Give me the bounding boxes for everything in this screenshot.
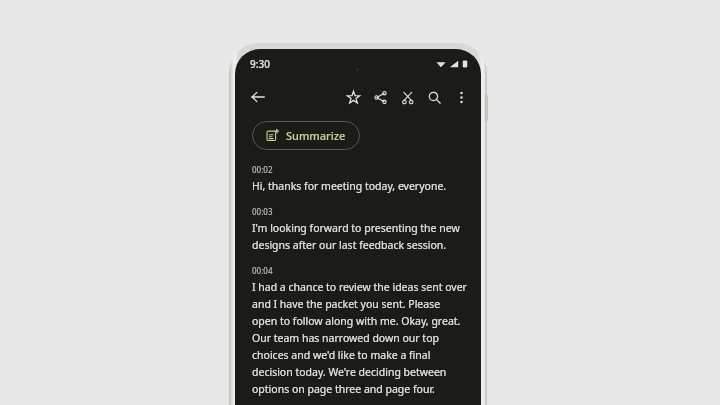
staticText: Summarize — [286, 128, 346, 143]
staticText: 9:30 — [250, 57, 270, 71]
button[interactable]: Back — [244, 83, 272, 111]
staticText: 00:02 — [252, 164, 273, 175]
staticText: 00:03 — [252, 206, 273, 217]
staticText: I'm looking forward to presenting the ne… — [252, 221, 468, 252]
staticText: Hi, thanks for meeting today, everyone. — [252, 179, 447, 193]
staticText: 00:04 — [252, 265, 273, 276]
button[interactable]: Search — [421, 84, 448, 111]
button[interactable]: Trim — [394, 84, 421, 111]
button[interactable]: More options — [448, 84, 475, 111]
button[interactable]: Summarize — [252, 121, 360, 150]
staticText: I had a chance to review the ideas sent … — [252, 280, 468, 396]
button[interactable]: Share — [367, 84, 394, 111]
button[interactable]: Star — [340, 84, 367, 111]
